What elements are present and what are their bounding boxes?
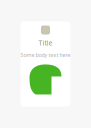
staticText: Some body text here xyxy=(20,51,70,58)
staticText: Title xyxy=(38,38,52,47)
